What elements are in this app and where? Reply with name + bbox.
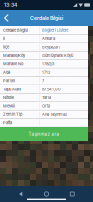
staticText: Tarla bbox=[42, 95, 51, 100]
staticText: Mevkii bbox=[3, 104, 15, 108]
button[interactable]: Mahalle No bbox=[0, 60, 88, 68]
button[interactable]: Ada bbox=[0, 68, 88, 76]
staticText: 7 bbox=[42, 78, 44, 83]
staticText: 87.541,00 bbox=[42, 87, 61, 91]
button[interactable]: Zemin Tip bbox=[0, 110, 88, 119]
button[interactable]: Home bbox=[41, 190, 51, 198]
button[interactable]: Pafta bbox=[0, 119, 88, 127]
staticText: Pafta bbox=[3, 120, 12, 125]
button[interactable]: Parsel bbox=[0, 76, 88, 85]
staticText: Cerdale Bilgisi bbox=[3, 28, 28, 33]
button[interactable]: İlçe bbox=[0, 43, 88, 51]
staticText: Beypazarı bbox=[42, 45, 60, 49]
staticText: Parsel bbox=[3, 78, 15, 83]
button[interactable]: Taşınmaz ara bbox=[0, 127, 88, 141]
staticText: İl bbox=[3, 36, 5, 41]
staticText: 1712 bbox=[42, 70, 50, 75]
staticText: Bilgileri Listele bbox=[42, 28, 68, 33]
staticText: Mahalle/Köy bbox=[3, 53, 25, 58]
staticText: Ana Taşınmaz bbox=[42, 112, 67, 117]
staticText: 13:34 bbox=[4, 2, 17, 8]
staticText: Ada bbox=[3, 70, 10, 75]
staticText: Mahalle No bbox=[3, 61, 23, 66]
staticText: 178/2/3 bbox=[42, 61, 54, 66]
button[interactable]: Cerdale Bilgisi bbox=[0, 26, 88, 34]
staticText: Cerdale Bilgisi bbox=[30, 15, 63, 21]
staticText: Tapu Alanı bbox=[3, 87, 21, 91]
button[interactable]: İl bbox=[0, 34, 88, 43]
button[interactable]: Nitelik bbox=[0, 93, 88, 102]
button[interactable]: Mevkii bbox=[0, 102, 88, 110]
staticText: Nitelik bbox=[3, 95, 14, 100]
button[interactable]: Mahalle/Köy bbox=[0, 51, 88, 60]
button[interactable]: Back bbox=[0, 10, 13, 26]
staticText: Zemin Tip bbox=[3, 112, 22, 117]
staticText: Ankara bbox=[42, 36, 55, 41]
staticText: İlçe bbox=[3, 45, 9, 49]
button[interactable]: Tapu Alanı bbox=[0, 85, 88, 93]
button[interactable]: Back bbox=[16, 190, 26, 198]
staticText: Orta bbox=[42, 104, 50, 108]
staticText: Gümüşhane Köyü bbox=[42, 53, 73, 58]
button[interactable]: Recent apps bbox=[67, 190, 77, 198]
staticText: Taşınmaz ara bbox=[28, 131, 59, 137]
